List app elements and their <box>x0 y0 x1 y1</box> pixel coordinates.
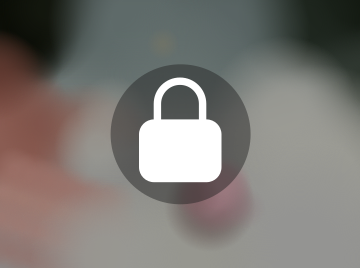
button[interactable]: Unlock <box>111 64 251 204</box>
